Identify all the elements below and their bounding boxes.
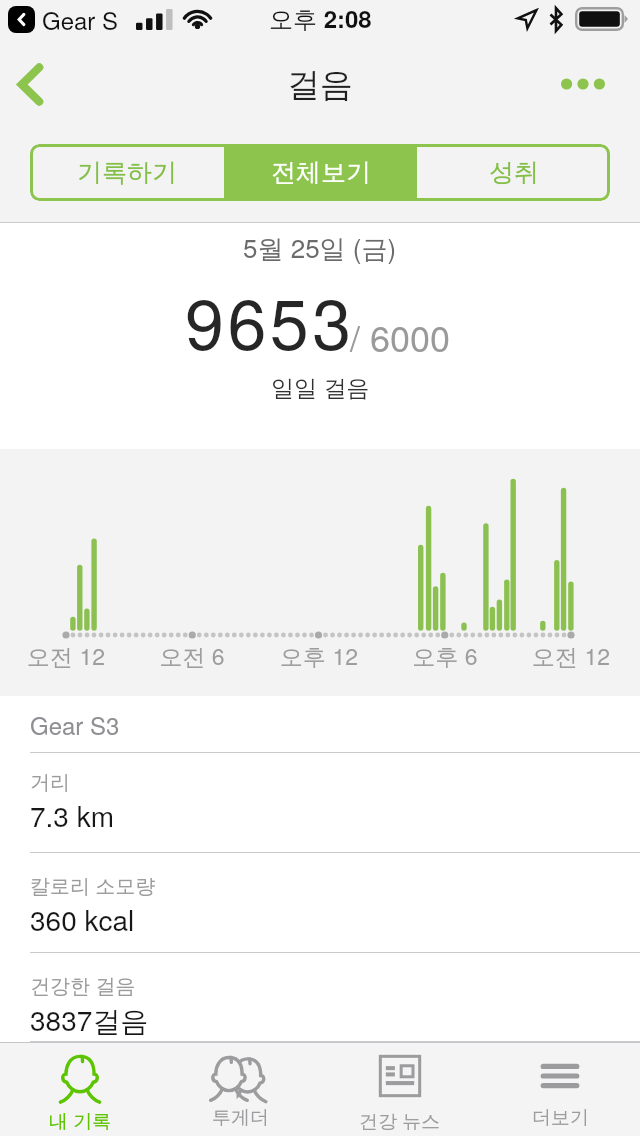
- button[interactable]: Gear S3: [0, 696, 640, 752]
- button[interactable]: Back: [0, 40, 60, 128]
- button[interactable]: More options: [525, 40, 640, 128]
- button[interactable]: 건강한 걸음: [0, 953, 640, 1042]
- staticText: Gear S: [42, 2, 119, 36]
- staticText: 성취: [489, 157, 539, 188]
- staticText: 더보기: [532, 1106, 589, 1130]
- staticText: 오후 6: [370, 639, 520, 672]
- staticText: / 6000: [350, 311, 451, 363]
- staticText: 오전 12: [0, 639, 141, 672]
- staticText: 거리: [30, 770, 70, 795]
- staticText: 오후 12: [244, 639, 394, 672]
- button[interactable]: 성취: [417, 144, 610, 201]
- staticText: 건강한 걸음: [30, 970, 136, 999]
- button[interactable]: 투게더: [160, 1043, 320, 1136]
- staticText: 5월 25일 (금): [243, 228, 397, 266]
- staticText: 건강 뉴스: [359, 1106, 441, 1133]
- staticText: 오전 6: [117, 639, 267, 672]
- staticText: 오후 2:08: [269, 1, 372, 35]
- staticText: 전체보기: [271, 157, 371, 188]
- staticText: 3837걸음: [30, 999, 149, 1039]
- button[interactable]: 건강 뉴스: [320, 1043, 480, 1136]
- staticText: 칼로리 소모량: [30, 870, 156, 899]
- button[interactable]: 기록하기: [30, 144, 224, 201]
- button[interactable]: 거리: [0, 753, 640, 853]
- button[interactable]: 더보기: [480, 1043, 640, 1136]
- staticText: 일일 걸음: [271, 370, 370, 403]
- button[interactable]: 내 기록: [0, 1043, 160, 1136]
- staticText: 오전 12: [496, 639, 640, 672]
- staticText: 내 기록: [49, 1106, 112, 1133]
- staticText: Gear S3: [30, 707, 120, 741]
- button[interactable]: 전체보기: [224, 144, 417, 201]
- staticText: 7.3 km: [30, 795, 115, 835]
- staticText: 기록하기: [77, 157, 177, 188]
- button[interactable]: 칼로리 소모량: [0, 853, 640, 953]
- staticText: 걸음: [287, 64, 353, 106]
- staticText: 9653: [185, 270, 355, 370]
- staticText: 투게더: [212, 1106, 269, 1130]
- staticText: 360 kcal: [30, 899, 135, 939]
